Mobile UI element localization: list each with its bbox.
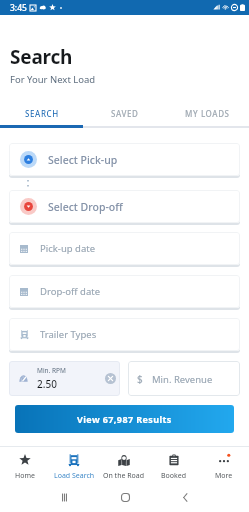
staticText: SAVED — [111, 108, 139, 119]
button[interactable]: Drop-off date — [9, 275, 240, 308]
staticText: Min. RPM — [37, 366, 66, 375]
staticText: View 67,987 Results — [77, 413, 172, 425]
staticText: Select Pick-up — [48, 153, 118, 167]
staticText: Load Search — [54, 471, 95, 481]
button[interactable]: Home — [95, 485, 155, 510]
staticText: Pick-up date — [40, 242, 96, 255]
staticText: 2.50 — [37, 377, 57, 391]
staticText: Trailer Types — [40, 328, 97, 341]
staticText: MY LOADS — [185, 108, 230, 119]
staticText: Drop-off date — [40, 285, 101, 298]
button[interactable]: More — [199, 447, 249, 487]
button[interactable]: View 67,987 Results — [15, 405, 234, 433]
staticText: On the Road — [103, 471, 145, 481]
staticText: For Your Next Load — [10, 73, 96, 86]
staticText: More — [215, 471, 233, 481]
button[interactable]: Trailer Types — [9, 318, 240, 351]
button[interactable]: Select Pick-up — [9, 143, 240, 176]
staticText: Home — [15, 471, 35, 481]
button[interactable]: Pick-up date — [9, 232, 240, 265]
button[interactable]: Booked — [149, 447, 199, 487]
button[interactable]: Back — [155, 485, 215, 510]
button[interactable]: Select Drop-off — [9, 190, 240, 223]
other: Clear — [105, 373, 116, 384]
button[interactable]: Recents — [34, 485, 95, 510]
staticText: 3:45 — [10, 2, 27, 14]
button[interactable]: Min. RPM — [9, 361, 120, 396]
staticText: Booked — [161, 471, 187, 481]
button[interactable]: Load Search — [49, 447, 99, 487]
button[interactable]: SAVED — [83, 102, 166, 128]
staticText: Min. Revenue — [152, 373, 213, 386]
staticText: $ — [137, 372, 143, 386]
button[interactable]: MY LOADS — [166, 102, 249, 128]
button[interactable]: $ — [128, 361, 240, 396]
staticText: SEARCH — [25, 108, 59, 119]
button[interactable]: On the Road — [99, 447, 149, 487]
staticText: Select Drop-off — [48, 200, 123, 214]
button[interactable]: Home — [0, 447, 49, 487]
staticText: Search — [10, 44, 73, 70]
button[interactable]: SEARCH — [0, 102, 83, 128]
